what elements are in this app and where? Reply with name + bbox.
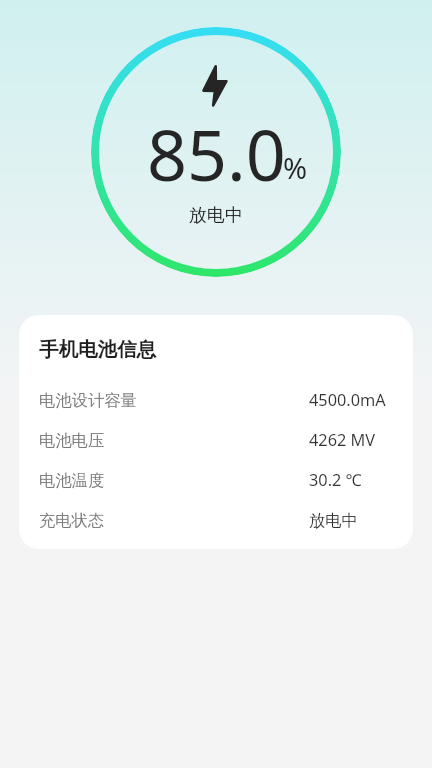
staticText: 30.2 ℃ xyxy=(309,469,362,491)
staticText: 4500.0mA xyxy=(309,389,386,411)
staticText: 电池温度 xyxy=(39,470,105,491)
staticText: % xyxy=(283,148,308,187)
staticText: 电池电压 xyxy=(39,430,105,451)
button[interactable]: Battery level 85 percent, discharging xyxy=(91,27,341,277)
staticText: 放电中 xyxy=(309,510,358,531)
staticText: 放电中 xyxy=(189,204,243,227)
button[interactable]: 电池电压 xyxy=(19,420,413,460)
staticText: 85.0 xyxy=(147,106,286,201)
other: Charging bolt xyxy=(202,65,228,107)
button[interactable]: 电池设计容量 xyxy=(19,380,413,420)
button[interactable]: 充电状态 xyxy=(19,500,413,540)
staticText: 电池设计容量 xyxy=(39,390,137,411)
staticText: 手机电池信息 xyxy=(39,337,156,362)
button[interactable]: 电池温度 xyxy=(19,460,413,500)
staticText: 充电状态 xyxy=(39,510,105,531)
staticText: 4262 MV xyxy=(309,429,376,451)
